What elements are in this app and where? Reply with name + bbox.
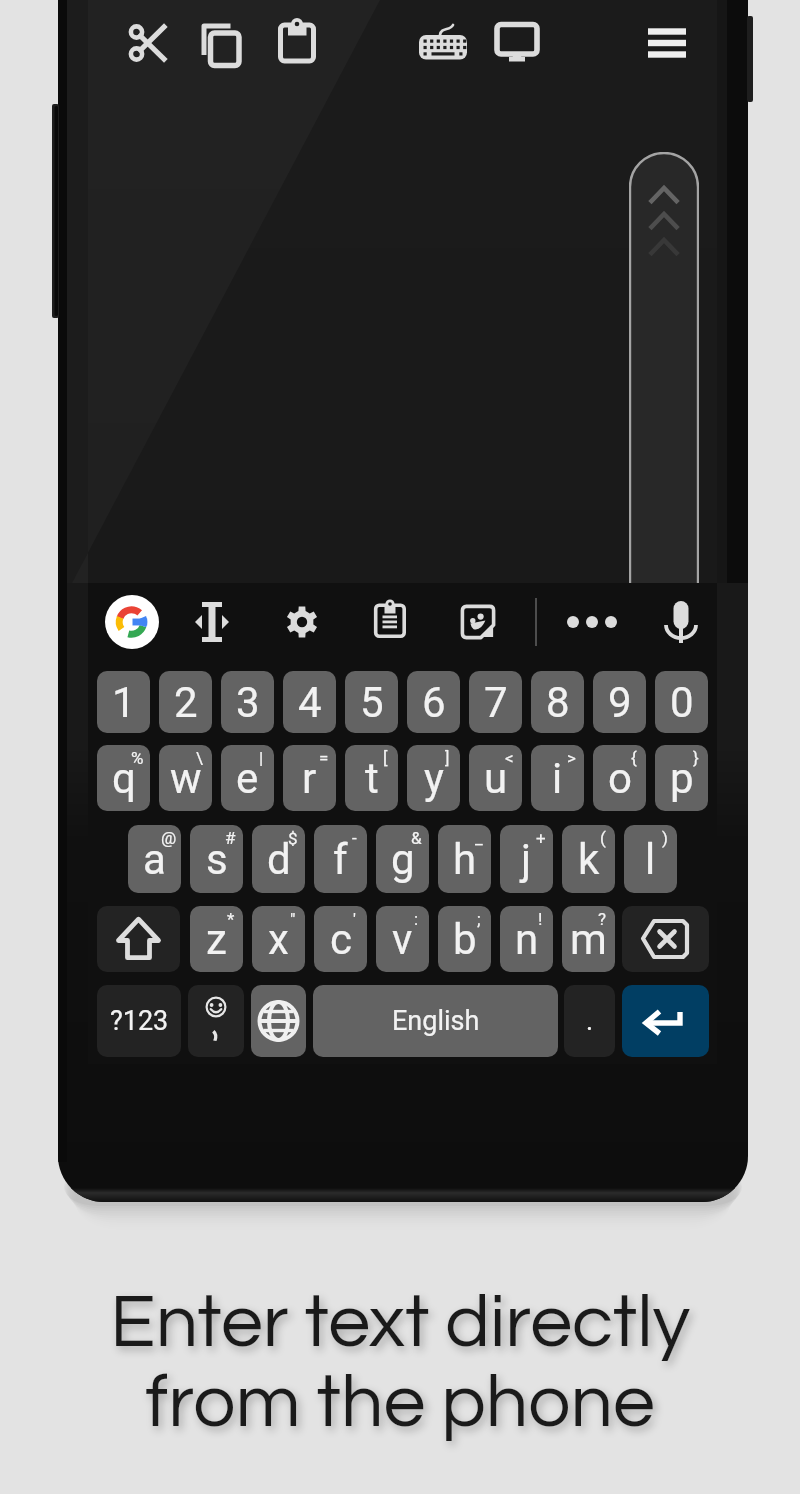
button[interactable]: 7 [469, 671, 522, 733]
staticText: z [206, 915, 227, 964]
button[interactable]: n [500, 906, 553, 972]
staticText: & [411, 828, 422, 848]
button[interactable]: Settings [274, 594, 330, 650]
staticText: ' [353, 909, 356, 929]
staticText: w [170, 754, 202, 803]
staticText: v [392, 915, 413, 964]
button[interactable]: English [313, 985, 558, 1057]
staticText: l [645, 835, 656, 884]
button[interactable]: 3 [221, 671, 274, 733]
button[interactable]: g [376, 825, 429, 893]
staticText: k [578, 835, 600, 884]
staticText: : [414, 909, 419, 929]
staticText: 0 [670, 678, 694, 727]
button[interactable]: Change language [251, 985, 306, 1057]
staticText: . [586, 1005, 594, 1037]
staticText: u [484, 754, 508, 803]
button[interactable]: 5 [345, 671, 398, 733]
staticText: $ [288, 828, 298, 848]
button[interactable]: Clipboard [362, 594, 418, 650]
button[interactable]: Display [489, 15, 545, 71]
button[interactable]: . [564, 985, 615, 1057]
button[interactable]: Copy [194, 18, 250, 74]
button[interactable]: Emoji [188, 985, 244, 1057]
button[interactable]: a [128, 825, 181, 893]
staticText: 5 [360, 678, 384, 727]
button[interactable]: l [624, 825, 677, 893]
button[interactable]: y [407, 745, 460, 811]
button[interactable]: v [376, 906, 429, 972]
staticText: \ [196, 748, 203, 768]
staticText: b [453, 915, 477, 964]
staticText: i [552, 754, 563, 803]
button[interactable]: c [314, 906, 367, 972]
button[interactable]: x [252, 906, 305, 972]
button[interactable]: Backspace [622, 906, 709, 972]
staticText: 2 [174, 678, 198, 727]
button[interactable]: 8 [531, 671, 584, 733]
button[interactable]: m [562, 906, 615, 972]
button[interactable]: p [655, 745, 708, 811]
staticText: [ [383, 748, 388, 768]
staticText: y [424, 754, 444, 803]
button[interactable]: 1 [97, 671, 150, 733]
button[interactable]: Voice input [653, 594, 709, 650]
button[interactable]: u [469, 745, 522, 811]
button[interactable]: Menu [639, 15, 695, 71]
staticText: q [112, 754, 136, 803]
staticText: 7 [484, 678, 508, 727]
staticText: 1 [112, 678, 136, 727]
staticText: # [225, 828, 236, 848]
button[interactable]: i [531, 745, 584, 811]
staticText: 6 [422, 678, 446, 727]
button[interactable]: h [438, 825, 491, 893]
button[interactable]: Stickers [450, 594, 506, 650]
button[interactable]: Scroll up [629, 152, 699, 583]
staticText: e [236, 754, 259, 803]
button[interactable]: w [159, 745, 212, 811]
button[interactable]: o [593, 745, 646, 811]
button[interactable]: d [252, 825, 305, 893]
staticText: % [131, 748, 144, 768]
button[interactable]: Enter [622, 985, 709, 1057]
staticText: a [143, 835, 166, 884]
staticText: ] [445, 748, 450, 768]
button[interactable]: e [221, 745, 274, 811]
button[interactable]: Paste [269, 15, 325, 71]
staticText: c [330, 915, 352, 964]
button[interactable]: Cut [120, 15, 176, 71]
staticText: n [515, 915, 539, 964]
button[interactable]: ?123 [97, 985, 181, 1057]
button[interactable]: Move cursor [184, 594, 240, 650]
staticText: - [352, 828, 357, 848]
staticText: g [391, 835, 415, 884]
button[interactable]: q [97, 745, 150, 811]
button[interactable]: 2 [159, 671, 212, 733]
button[interactable]: 9 [593, 671, 646, 733]
button[interactable]: More options [564, 594, 620, 650]
button[interactable]: 4 [283, 671, 336, 733]
button[interactable]: k [562, 825, 615, 893]
staticText: ; [477, 909, 481, 929]
button[interactable]: Shift [97, 906, 180, 972]
button[interactable]: 6 [407, 671, 460, 733]
staticText: { [631, 748, 637, 768]
button[interactable]: j [500, 825, 553, 893]
staticText: < [505, 748, 514, 768]
staticText: = [319, 748, 329, 768]
staticText: t [365, 754, 379, 803]
button[interactable]: b [438, 906, 491, 972]
button[interactable]: 0 [655, 671, 708, 733]
staticText: 4 [298, 678, 322, 727]
staticText: @ [161, 828, 177, 848]
staticText: d [267, 835, 291, 884]
button[interactable]: s [190, 825, 243, 893]
button[interactable]: t [345, 745, 398, 811]
button[interactable]: f [314, 825, 367, 893]
staticText: _ [475, 828, 483, 848]
button[interactable]: Keyboard [415, 15, 471, 71]
button[interactable]: z [190, 906, 243, 972]
button[interactable]: Google search [104, 594, 160, 650]
button[interactable]: r [283, 745, 336, 811]
staticText: h [453, 835, 477, 884]
